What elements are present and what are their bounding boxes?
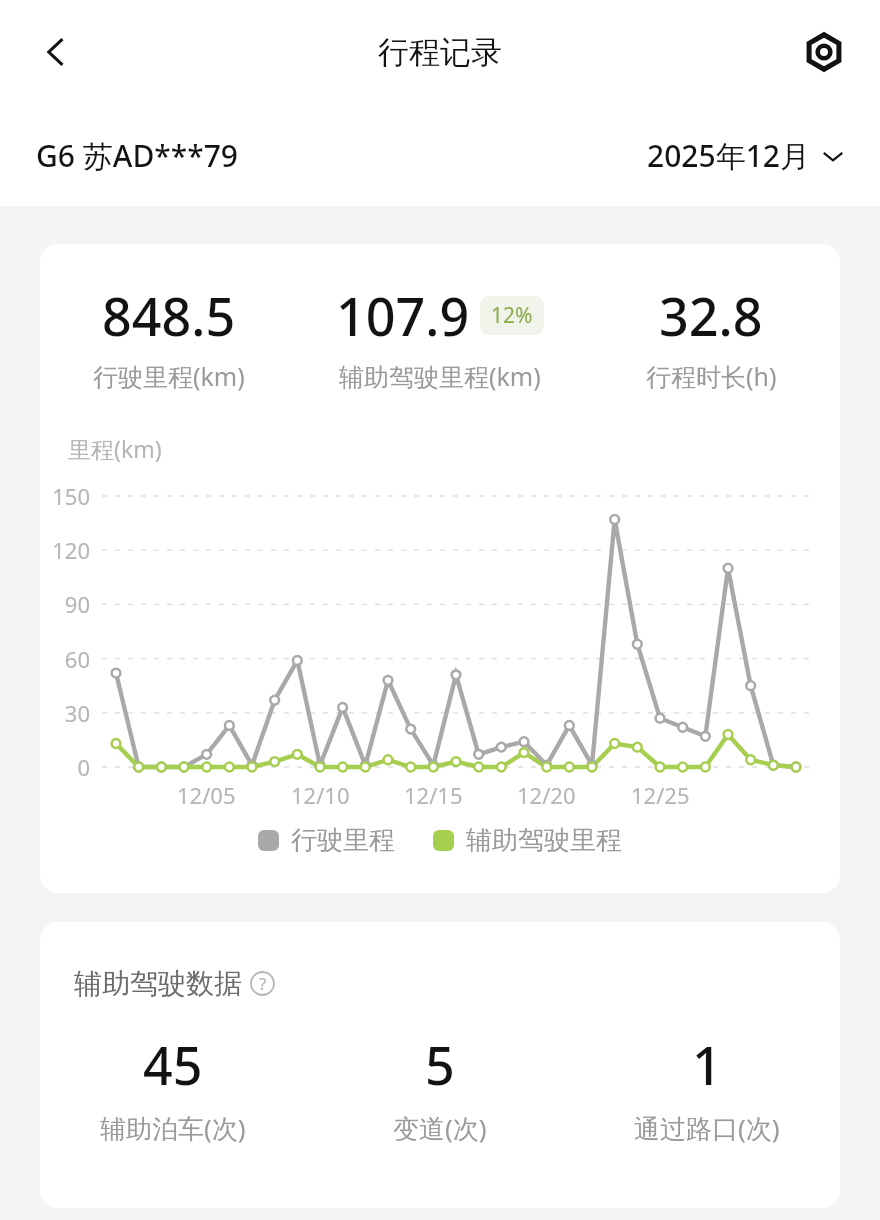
staticText: 32.8 bbox=[659, 280, 763, 351]
button[interactable]: 45 bbox=[40, 1029, 306, 1146]
button[interactable]: Back bbox=[28, 24, 84, 80]
staticText: 12/10 bbox=[291, 780, 350, 810]
staticText: 行程记录 bbox=[378, 33, 502, 72]
staticText: 辅助驾驶里程(km) bbox=[339, 359, 541, 393]
staticText: 12/05 bbox=[177, 780, 236, 810]
staticText: 辅助驾驶里程 bbox=[466, 824, 622, 857]
button[interactable]: Settings bbox=[796, 24, 852, 80]
staticText: 90 bbox=[64, 589, 90, 619]
staticText: 60 bbox=[64, 644, 90, 674]
staticText: 848.5 bbox=[102, 280, 236, 351]
staticText: 变道(次) bbox=[393, 1110, 487, 1146]
staticText: 里程(km) bbox=[68, 433, 162, 464]
staticText: G6 苏AD***79 bbox=[36, 135, 238, 176]
staticText: 1 bbox=[692, 1029, 722, 1100]
staticText: 120 bbox=[52, 535, 90, 565]
staticText: 通过路口(次) bbox=[634, 1110, 780, 1146]
button[interactable]: 1 bbox=[573, 1029, 840, 1146]
staticText: 行驶里程 bbox=[291, 824, 395, 857]
staticText: 行程时长(h) bbox=[646, 359, 777, 393]
staticText: 107.9 bbox=[336, 280, 470, 351]
staticText: 150 bbox=[52, 481, 90, 511]
staticText: 5 bbox=[425, 1029, 455, 1100]
staticText: 0 bbox=[77, 752, 90, 782]
staticText: 辅助驾驶数据 bbox=[74, 966, 242, 1001]
staticText: 12% bbox=[491, 301, 533, 330]
staticText: 行驶里程(km) bbox=[93, 359, 245, 393]
staticText: ? bbox=[259, 972, 267, 995]
staticText: 12/25 bbox=[631, 780, 690, 810]
staticText: 12/20 bbox=[517, 780, 576, 810]
staticText: 45 bbox=[143, 1029, 203, 1100]
staticText: 12/15 bbox=[404, 780, 463, 810]
button[interactable]: 2025年12月 bbox=[647, 135, 844, 176]
staticText: 辅助泊车(次) bbox=[100, 1110, 246, 1146]
button[interactable]: 5 bbox=[306, 1029, 573, 1146]
button[interactable]: Info bbox=[249, 970, 276, 997]
staticText: 30 bbox=[64, 698, 90, 728]
staticText: 2025年12月 bbox=[647, 135, 810, 176]
